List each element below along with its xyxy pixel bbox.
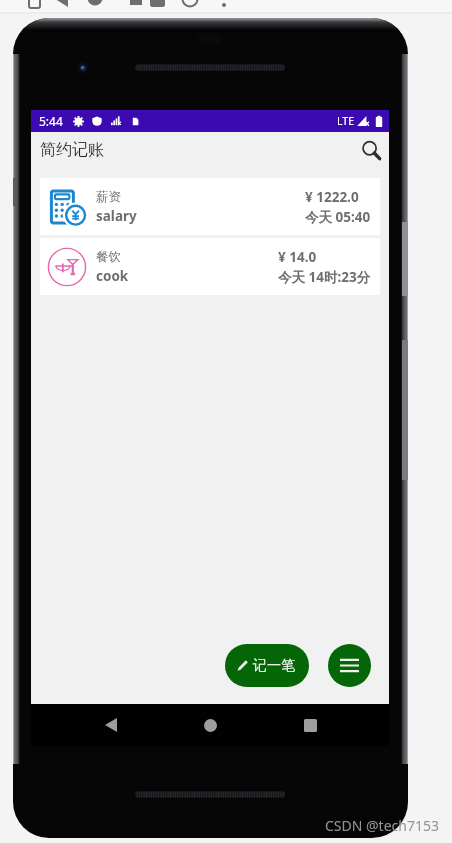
staticText: 记一笔 [253,657,295,675]
staticText: 今天 05:40 [305,208,371,226]
staticText: LTE [337,114,354,128]
staticText: 5:44 [39,113,63,129]
button[interactable]: Recents [290,705,330,745]
staticText: ¥ 1222.0 [305,188,359,206]
button[interactable]: Menu [328,644,371,687]
button[interactable]: 薪资 [40,178,380,235]
button[interactable]: Search [355,134,387,166]
staticText: CSDN @tech7153 [325,816,439,835]
button[interactable]: Home [190,705,230,745]
staticText: ¥ 14.0 [278,248,317,266]
button[interactable]: Back [91,705,131,745]
staticText: cook [96,267,129,285]
staticText: salary [96,207,137,225]
staticText: 薪资 [96,189,121,205]
button[interactable]: 餐饮 [40,238,380,295]
staticText: 餐饮 [96,249,121,265]
button[interactable]: 记一笔 [225,644,309,687]
staticText: 今天 14时:23分 [278,268,371,286]
staticText: 简约记账 [40,140,104,160]
